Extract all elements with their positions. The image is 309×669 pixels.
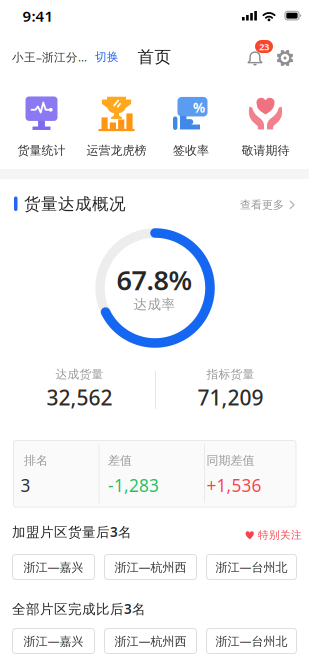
staticText: 敬请期待 bbox=[241, 143, 289, 158]
button[interactable]: 敬请期待 bbox=[228, 96, 303, 158]
staticText: 加盟片区货量后3名 bbox=[12, 522, 132, 541]
staticText: 同期差值 bbox=[206, 453, 254, 468]
staticText: 9:41 bbox=[22, 6, 53, 26]
button[interactable]: 切换 bbox=[95, 50, 119, 64]
staticText: 小王–浙江分... bbox=[12, 49, 87, 65]
button[interactable]: 浙江—台州北 bbox=[206, 554, 297, 580]
staticText: -1,283 bbox=[108, 473, 159, 497]
staticText: 运营龙虎榜 bbox=[86, 143, 146, 158]
button[interactable]: Notifications bbox=[246, 40, 273, 67]
staticText: 货量达成概况 bbox=[24, 194, 126, 214]
staticText: 67.8% bbox=[116, 261, 192, 298]
staticText: 特别关注 bbox=[258, 528, 302, 542]
staticText: 切换 bbox=[95, 50, 119, 64]
button[interactable]: 查看更多 bbox=[240, 198, 296, 212]
staticText: 首页 bbox=[137, 47, 171, 67]
staticText: +1,536 bbox=[206, 473, 261, 497]
button[interactable]: 浙江—嘉兴 bbox=[12, 554, 95, 580]
button[interactable]: 货量统计 bbox=[4, 96, 79, 158]
staticText: 达成率 bbox=[133, 296, 175, 313]
staticText: 浙江—杭州西 bbox=[114, 559, 186, 575]
button[interactable]: 运营龙虎榜 bbox=[79, 96, 154, 158]
button[interactable]: 浙江—杭州西 bbox=[104, 554, 197, 580]
button[interactable]: 浙江—台州北 bbox=[206, 628, 297, 654]
button[interactable]: 特别关注 bbox=[245, 528, 302, 542]
staticText: % bbox=[193, 98, 205, 117]
staticText: 浙江—台州北 bbox=[215, 633, 287, 649]
staticText: 签收率 bbox=[173, 143, 209, 158]
staticText: 23 bbox=[259, 40, 269, 53]
staticText: 排名 bbox=[24, 453, 48, 468]
staticText: 3 bbox=[20, 473, 30, 497]
staticText: 货量统计 bbox=[17, 143, 65, 158]
button[interactable]: Settings bbox=[274, 47, 296, 69]
staticText: 32,562 bbox=[46, 383, 112, 412]
staticText: 浙江—台州北 bbox=[215, 559, 287, 575]
staticText: 指标货量 bbox=[206, 367, 254, 382]
staticText: 浙江—嘉兴 bbox=[23, 559, 83, 575]
staticText: 全部片区完成比后3名 bbox=[12, 599, 146, 618]
staticText: 差值 bbox=[108, 453, 132, 468]
staticText: 达成货量 bbox=[55, 367, 103, 382]
button[interactable]: % bbox=[153, 96, 228, 158]
staticText: 查看更多 bbox=[240, 198, 284, 212]
staticText: 浙江—嘉兴 bbox=[23, 633, 83, 649]
staticText: 浙江—杭州西 bbox=[114, 633, 186, 649]
button[interactable]: 浙江—杭州西 bbox=[104, 628, 197, 654]
button[interactable]: 浙江—嘉兴 bbox=[12, 628, 95, 654]
staticText: 71,209 bbox=[197, 383, 263, 412]
